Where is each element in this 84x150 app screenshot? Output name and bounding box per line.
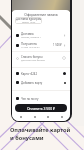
button[interactable]: Home (16, 114, 25, 120)
button[interactable]: Добавить карту (12, 79, 70, 86)
staticText: Добавить карту (21, 81, 43, 85)
staticText: Оплатить 3 500 ₽ (27, 106, 55, 111)
button[interactable]: Карта •4242 (12, 70, 70, 77)
staticText: Оформление заказа (12, 12, 70, 17)
staticText: Доставка (21, 32, 34, 36)
button[interactable]: Profile (57, 114, 66, 120)
button[interactable]: Списать бонусы (12, 54, 70, 62)
button[interactable]: Catalog (30, 114, 39, 120)
staticText: Карта •4242 (21, 72, 37, 76)
button[interactable]: Получатель (12, 41, 70, 49)
staticText: Доступно 500 баллов (21, 59, 45, 62)
staticText: Чек на почту (21, 97, 39, 101)
button[interactable]: Cart (43, 114, 52, 120)
staticText: Списать бонусы (21, 55, 43, 59)
button[interactable]: Доставка курьером (15, 17, 42, 24)
staticText: Оплачивайте картой (10, 126, 71, 134)
button[interactable]: Доставка (12, 31, 70, 39)
staticText: Москва, Ленина 1 (21, 36, 41, 39)
button[interactable]: Чек на почту (12, 95, 70, 102)
staticText: завтра, 10:00 (22, 21, 36, 24)
staticText: +7 999 123-45-67 (21, 46, 40, 49)
staticText: Доставка курьером (16, 17, 42, 21)
button[interactable]: Оплатить 3 500 ₽ (15, 104, 67, 112)
staticText: и бонусами (10, 134, 44, 142)
staticText: 1 500 ₽ (53, 43, 62, 47)
staticText: Получатель (21, 42, 37, 46)
